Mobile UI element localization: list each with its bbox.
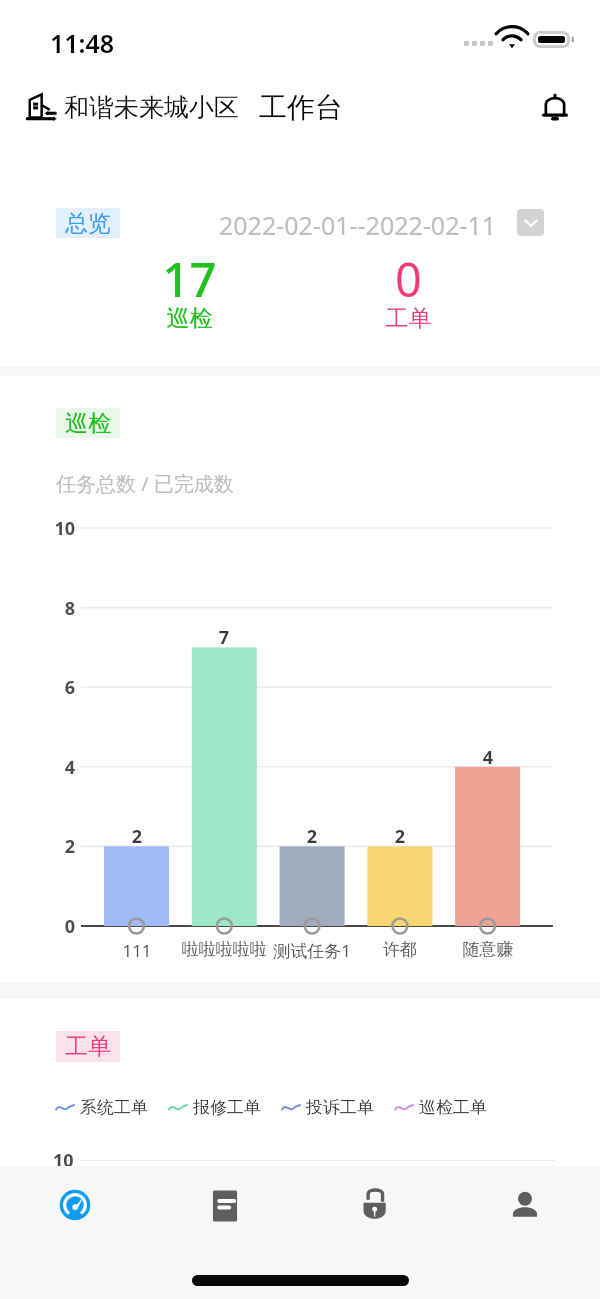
staticText: 111 (77, 939, 197, 962)
staticText: 10 (53, 1148, 74, 1173)
button[interactable]: 工单 (56, 1031, 120, 1062)
staticText: 2 (97, 824, 177, 849)
staticText: 17 (80, 247, 299, 311)
button[interactable]: 0 (299, 247, 518, 337)
staticText: 随意赚 (428, 939, 548, 960)
staticText: 4 (44, 755, 75, 780)
button[interactable]: 巡检 (56, 408, 120, 438)
staticText: 0 (299, 247, 518, 311)
staticText: 总览 (65, 209, 111, 238)
button[interactable]: 17 (80, 247, 299, 337)
button[interactable]: Notifications (530, 81, 580, 131)
button[interactable]: Reports (150, 1166, 300, 1244)
staticText: 2022-02-01--2022-02-11 (219, 208, 497, 242)
staticText: 测试任务1 (252, 939, 372, 962)
staticText: 报修工单 (193, 1097, 261, 1118)
staticText: 系统工单 (80, 1097, 148, 1118)
staticText: 11:48 (50, 26, 115, 60)
staticText: 工单 (65, 1032, 111, 1061)
staticText: 巡检 (80, 304, 299, 333)
other: Community (26, 91, 60, 125)
staticText: 工单 (299, 304, 518, 333)
staticText: 巡检工单 (419, 1097, 487, 1118)
staticText: 6 (44, 675, 75, 700)
staticText: 4 (448, 745, 528, 770)
staticText: 啦啦啦啦啦 (164, 939, 284, 960)
button[interactable]: Dashboard (0, 1166, 150, 1244)
staticText: 2 (272, 824, 352, 849)
staticText: 巡检 (65, 409, 111, 438)
staticText: 投诉工单 (306, 1097, 374, 1118)
staticText: 8 (44, 596, 75, 621)
button[interactable]: 总览 (56, 208, 120, 238)
staticText: 工作台 (259, 90, 343, 125)
button[interactable]: Profile (450, 1166, 600, 1244)
staticText: 任务总数 / 已完成数 (56, 470, 234, 497)
staticText: 2 (360, 824, 440, 849)
staticText: 7 (184, 625, 264, 650)
staticText: 和谐未来城小区 (64, 92, 239, 123)
staticText: 许都 (340, 939, 460, 960)
staticText: 10 (44, 516, 75, 541)
button[interactable]: Select date range (517, 209, 544, 236)
staticText: 0 (44, 914, 75, 939)
button[interactable]: Security (300, 1166, 450, 1244)
staticText: 2 (44, 834, 75, 859)
